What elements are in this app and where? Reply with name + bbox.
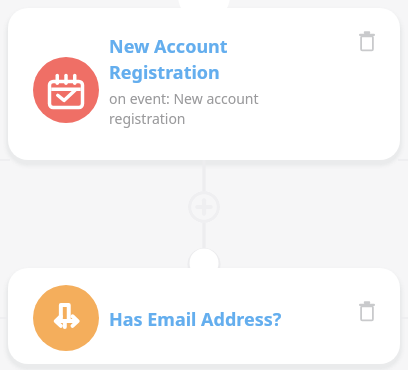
staticText: Has Email Address? — [109, 307, 282, 332]
button[interactable]: New Account Registration — [8, 8, 400, 160]
staticText: New Account Registration — [109, 34, 309, 84]
button[interactable]: Delete Has Email Address condition — [350, 294, 384, 328]
button[interactable]: Add step — [188, 191, 220, 223]
button[interactable]: Has Email Address? — [8, 268, 400, 364]
staticText: on event: New account registration — [109, 89, 309, 129]
button[interactable]: Delete New Account Registration trigger — [350, 24, 384, 58]
